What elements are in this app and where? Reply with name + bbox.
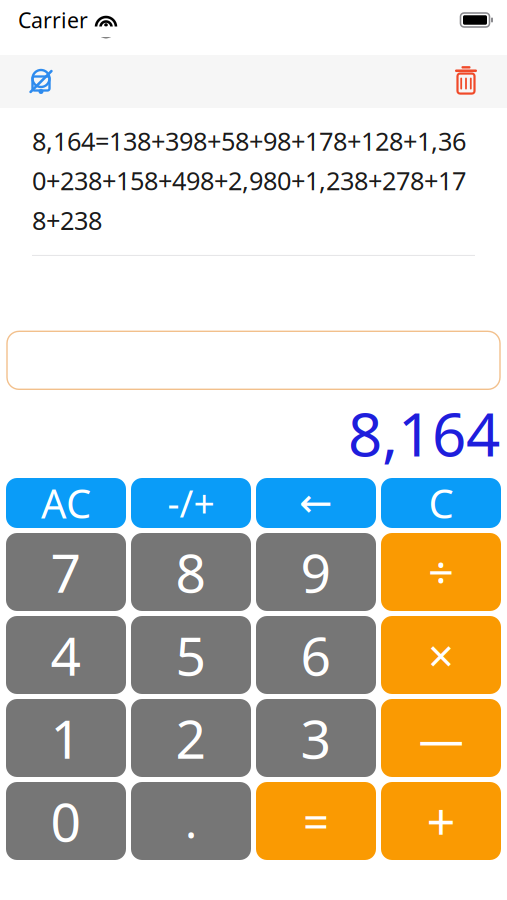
staticText: -/+ <box>167 478 214 528</box>
button[interactable]: 5 <box>131 616 251 694</box>
staticText: 9 <box>300 537 331 607</box>
button[interactable]: 7 <box>6 533 126 611</box>
staticText: ÷ <box>428 542 454 602</box>
staticText: + <box>426 787 455 855</box>
button[interactable]: 3 <box>256 699 376 777</box>
button[interactable]: 6 <box>256 616 376 694</box>
staticText: 8 <box>175 537 206 607</box>
staticText: ← <box>299 480 333 526</box>
staticText: — <box>418 708 463 768</box>
staticText: 5 <box>175 620 206 690</box>
staticText: = <box>303 791 329 851</box>
button[interactable]: Equals <box>256 782 376 860</box>
button[interactable]: Mute <box>14 55 68 107</box>
button[interactable]: Backspace <box>256 478 376 528</box>
button[interactable]: 0 <box>6 782 126 860</box>
button[interactable]: 8 <box>131 533 251 611</box>
button[interactable]: Divide <box>381 533 501 611</box>
button[interactable]: C <box>381 478 501 528</box>
staticText: × <box>428 625 454 685</box>
button[interactable]: Minus <box>381 699 501 777</box>
button[interactable]: 9 <box>256 533 376 611</box>
staticText: 0 <box>50 786 81 856</box>
staticText: Carrier <box>18 6 88 34</box>
staticText: 7 <box>50 537 81 607</box>
button[interactable]: Clear history <box>439 55 493 107</box>
staticText: 6 <box>300 620 331 690</box>
staticText: 3 <box>300 703 331 773</box>
staticText: 2 <box>175 703 206 773</box>
button[interactable]: . <box>131 782 251 860</box>
button[interactable]: 1 <box>6 699 126 777</box>
button[interactable]: Multiply <box>381 616 501 694</box>
button[interactable]: Plus <box>381 782 501 860</box>
button[interactable]: 4 <box>6 616 126 694</box>
staticText: 8,164=138+398+58+98+178+128+1,360+238+15… <box>32 124 466 237</box>
staticText: 4 <box>50 620 81 690</box>
staticText: 1 <box>50 703 81 773</box>
button[interactable]: -/+ <box>131 478 251 528</box>
staticText: . <box>185 791 197 851</box>
staticText: 8,164 <box>348 393 500 473</box>
staticText: AC <box>41 476 91 529</box>
staticText: C <box>428 476 453 529</box>
button[interactable]: AC <box>6 478 126 528</box>
button[interactable]: 2 <box>131 699 251 777</box>
